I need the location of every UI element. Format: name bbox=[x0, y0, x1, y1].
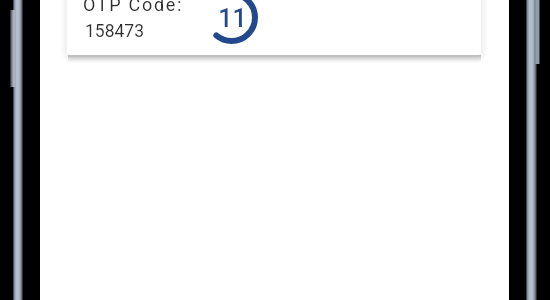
staticText: 11 bbox=[218, 4, 247, 33]
staticText: OTP Code: bbox=[83, 0, 184, 15]
button[interactable]: OTP Code: bbox=[67, 0, 481, 55]
staticText: 158473 bbox=[85, 21, 145, 42]
